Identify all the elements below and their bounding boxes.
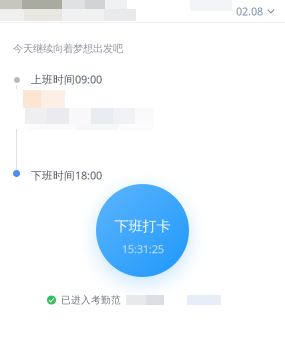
staticText: 下班时间18:00	[31, 168, 102, 182]
staticText: 已进入考勤范	[61, 294, 121, 306]
button[interactable]: 下班打卡	[96, 184, 189, 277]
staticText: 今天继续向着梦想出发吧	[13, 42, 123, 55]
staticText: 15:31:25	[121, 241, 163, 257]
staticText: 02.08	[236, 4, 263, 18]
staticText: 上班时间09:00	[31, 72, 102, 86]
staticText: 下班打卡	[114, 217, 170, 235]
button[interactable]: 02.08	[234, 1, 277, 21]
